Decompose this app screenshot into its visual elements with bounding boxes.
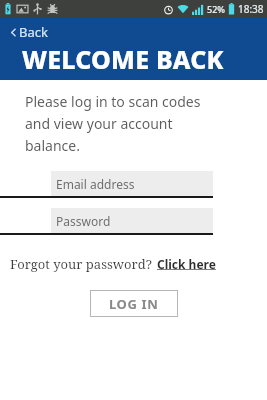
button[interactable]: Back (8, 21, 51, 43)
staticText: WELCOME BACK (22, 42, 224, 76)
button[interactable]: Email address (0, 171, 267, 196)
staticText: Password (56, 213, 111, 229)
staticText: Please log in to scan codes and view you… (25, 92, 201, 155)
button[interactable]: LOG IN (90, 290, 178, 317)
staticText: Forgot your password? (10, 255, 152, 273)
button[interactable]: Password (0, 208, 267, 233)
staticText: LOG IN (109, 295, 159, 313)
button[interactable]: Click here (157, 255, 216, 273)
staticText: 18:38 (238, 2, 264, 16)
staticText: 52% (207, 3, 225, 15)
staticText: Back (19, 23, 48, 41)
staticText: Email address (56, 176, 135, 192)
staticText: Click here (157, 256, 216, 272)
